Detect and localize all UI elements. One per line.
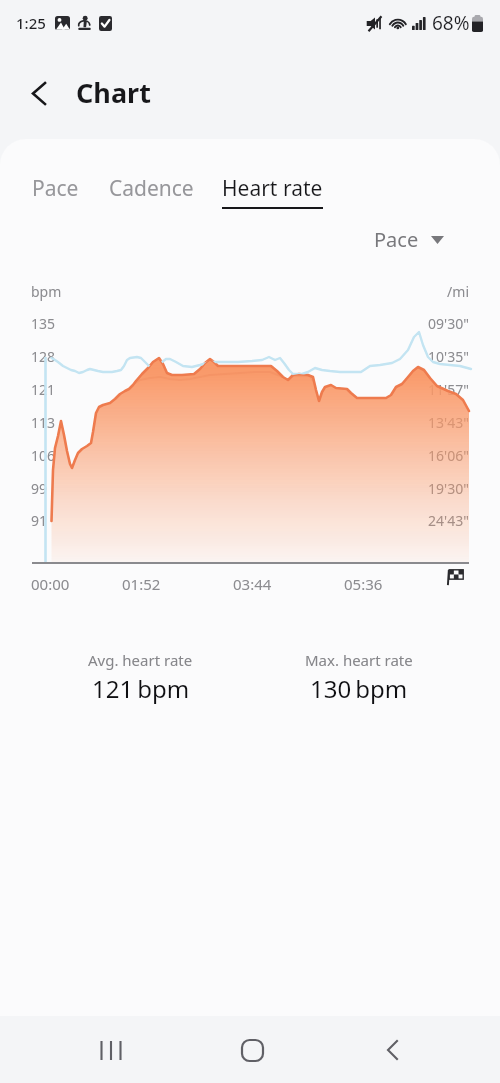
staticText: 09'30" <box>0 314 469 333</box>
staticText: 05:36 <box>344 574 383 594</box>
staticText: Heart rate <box>222 174 323 203</box>
staticText: 03:44 <box>233 574 272 594</box>
staticText: 121 <box>31 380 56 399</box>
staticText: 00:00 <box>31 574 70 594</box>
staticText: /mi <box>0 282 469 301</box>
staticText: 135 <box>31 314 56 333</box>
staticText: 13'43" <box>0 413 469 432</box>
staticText: 19'30" <box>0 479 469 498</box>
other: Finish <box>447 568 465 586</box>
staticText: Pace <box>374 226 419 253</box>
staticText: 99 <box>31 479 48 498</box>
staticText: Max. heart rate <box>305 650 413 670</box>
staticText: 128 <box>31 347 56 366</box>
staticText: 113 <box>31 413 56 432</box>
staticText: 1:25 <box>16 13 46 33</box>
staticText: 91 <box>31 511 48 530</box>
button[interactable]: Back <box>366 1024 418 1076</box>
staticText: 01:52 <box>122 574 161 594</box>
staticText: Pace <box>32 174 79 203</box>
staticText: bpm <box>31 282 62 301</box>
button[interactable]: Max. heart rate <box>305 650 413 705</box>
button[interactable]: Recent apps <box>85 1024 137 1076</box>
button[interactable]: Back <box>22 76 56 110</box>
staticText: 106 <box>31 446 56 465</box>
staticText: Chart <box>76 74 151 111</box>
button[interactable]: Avg. heart rate <box>88 650 193 705</box>
staticText: 68% <box>432 10 470 36</box>
staticText: Avg. heart rate <box>88 650 193 670</box>
staticText: 121 bpm <box>92 672 190 705</box>
staticText: 24'43" <box>0 511 469 530</box>
staticText: 11'57" <box>0 380 469 399</box>
staticText: Cadence <box>109 174 194 203</box>
button[interactable]: Heart rate <box>222 174 323 209</box>
button[interactable]: Cadence <box>109 174 194 209</box>
staticText: 130 bpm <box>310 672 408 705</box>
button[interactable]: Pace <box>32 174 79 209</box>
button[interactable]: Home <box>226 1024 278 1076</box>
button[interactable]: Pace <box>370 222 448 257</box>
staticText: 10'35" <box>0 347 469 366</box>
staticText: 16'06" <box>0 446 469 465</box>
